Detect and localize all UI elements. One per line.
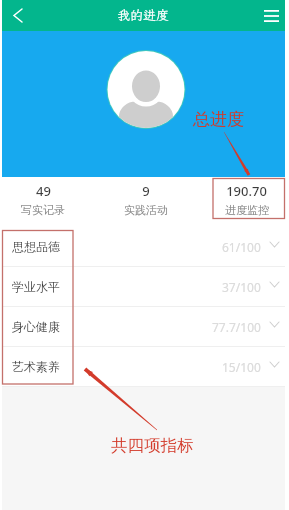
button[interactable]: 身心健康: [2, 307, 285, 346]
button[interactable]: 49: [2, 177, 84, 227]
button[interactable]: 190.70: [208, 177, 285, 227]
staticText: 总进度: [193, 109, 244, 130]
button[interactable]: 学业水平: [2, 267, 285, 306]
staticText: 共四项指标: [111, 435, 194, 456]
staticText: 思想品德: [12, 239, 60, 254]
staticText: 我的进度: [117, 7, 170, 24]
button[interactable]: Menu: [257, 0, 285, 31]
staticText: 61/100: [222, 239, 261, 255]
button[interactable]: 9: [84, 177, 208, 227]
staticText: 49: [36, 182, 51, 200]
button[interactable]: 艺术素养: [2, 347, 285, 386]
staticText: 15/100: [222, 359, 261, 375]
staticText: 37/100: [222, 279, 261, 295]
staticText: 77.7/100: [212, 319, 261, 335]
staticText: 写实记录: [21, 203, 65, 217]
staticText: 学业水平: [12, 279, 60, 294]
staticText: 9: [142, 182, 150, 200]
button[interactable]: 思想品德: [2, 227, 285, 266]
button[interactable]: Back: [2, 0, 34, 31]
staticText: 进度监控: [225, 203, 269, 217]
staticText: 艺术素养: [12, 359, 60, 374]
staticText: 190.70: [226, 182, 267, 200]
staticText: 实践活动: [124, 203, 168, 217]
staticText: 身心健康: [12, 319, 60, 334]
